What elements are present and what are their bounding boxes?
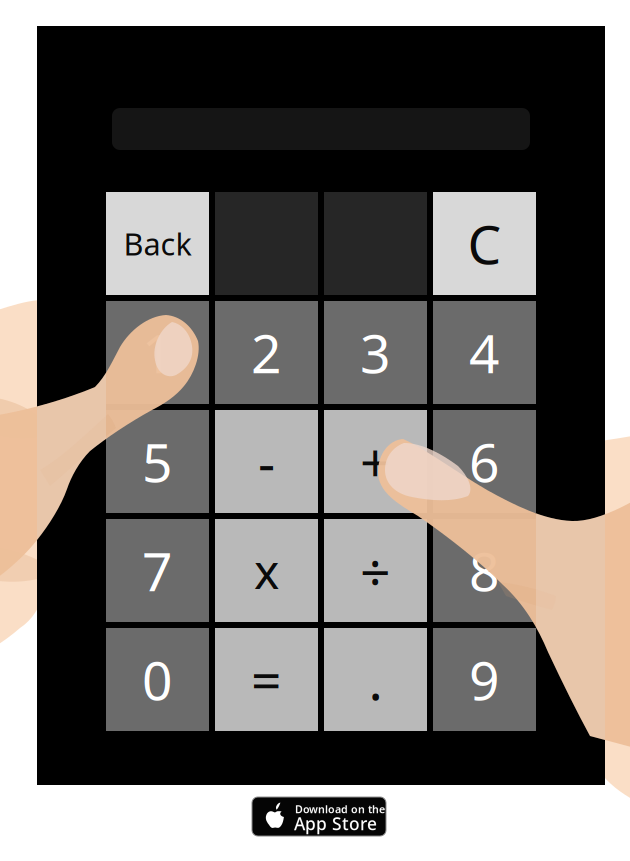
staticText: 3 xyxy=(360,317,391,388)
staticText: 5 xyxy=(142,426,173,497)
staticText: x xyxy=(254,539,279,602)
button[interactable]: = xyxy=(215,628,318,731)
button[interactable]: 3 xyxy=(324,301,427,404)
button[interactable]: 9 xyxy=(433,628,536,731)
staticText: 8 xyxy=(469,535,500,606)
button[interactable]: + xyxy=(324,410,427,513)
staticText: 1 xyxy=(142,317,173,388)
staticText: 7 xyxy=(142,535,173,606)
staticText: Back xyxy=(123,223,191,264)
button[interactable]: 0 xyxy=(106,628,209,731)
button[interactable]: 2 xyxy=(215,301,318,404)
button[interactable]: 6 xyxy=(433,410,536,513)
button[interactable]: 1 xyxy=(106,301,209,404)
button[interactable]: . xyxy=(324,628,427,731)
button[interactable]: 5 xyxy=(106,410,209,513)
button[interactable]: Back xyxy=(106,192,209,295)
button[interactable]: - xyxy=(215,410,318,513)
staticText: C xyxy=(467,208,501,279)
staticText: = xyxy=(251,644,282,715)
button[interactable]: 4 xyxy=(433,301,536,404)
staticText: 0 xyxy=(142,644,173,715)
staticText: 6 xyxy=(469,426,500,497)
button[interactable]: x xyxy=(215,519,318,622)
staticText: ÷ xyxy=(360,535,391,606)
staticText: Download on the xyxy=(295,802,385,816)
staticText: - xyxy=(258,426,275,497)
staticText: 2 xyxy=(251,317,282,388)
staticText: 4 xyxy=(469,317,500,388)
staticText: + xyxy=(360,426,391,497)
staticText: App Store xyxy=(294,812,377,835)
button[interactable]: C xyxy=(433,192,536,295)
staticText: . xyxy=(368,644,382,715)
staticText: 9 xyxy=(469,644,500,715)
button[interactable]: Download on the App Store xyxy=(252,797,386,836)
button[interactable]: ÷ xyxy=(324,519,427,622)
button[interactable]: 8 xyxy=(433,519,536,622)
button[interactable]: 7 xyxy=(106,519,209,622)
